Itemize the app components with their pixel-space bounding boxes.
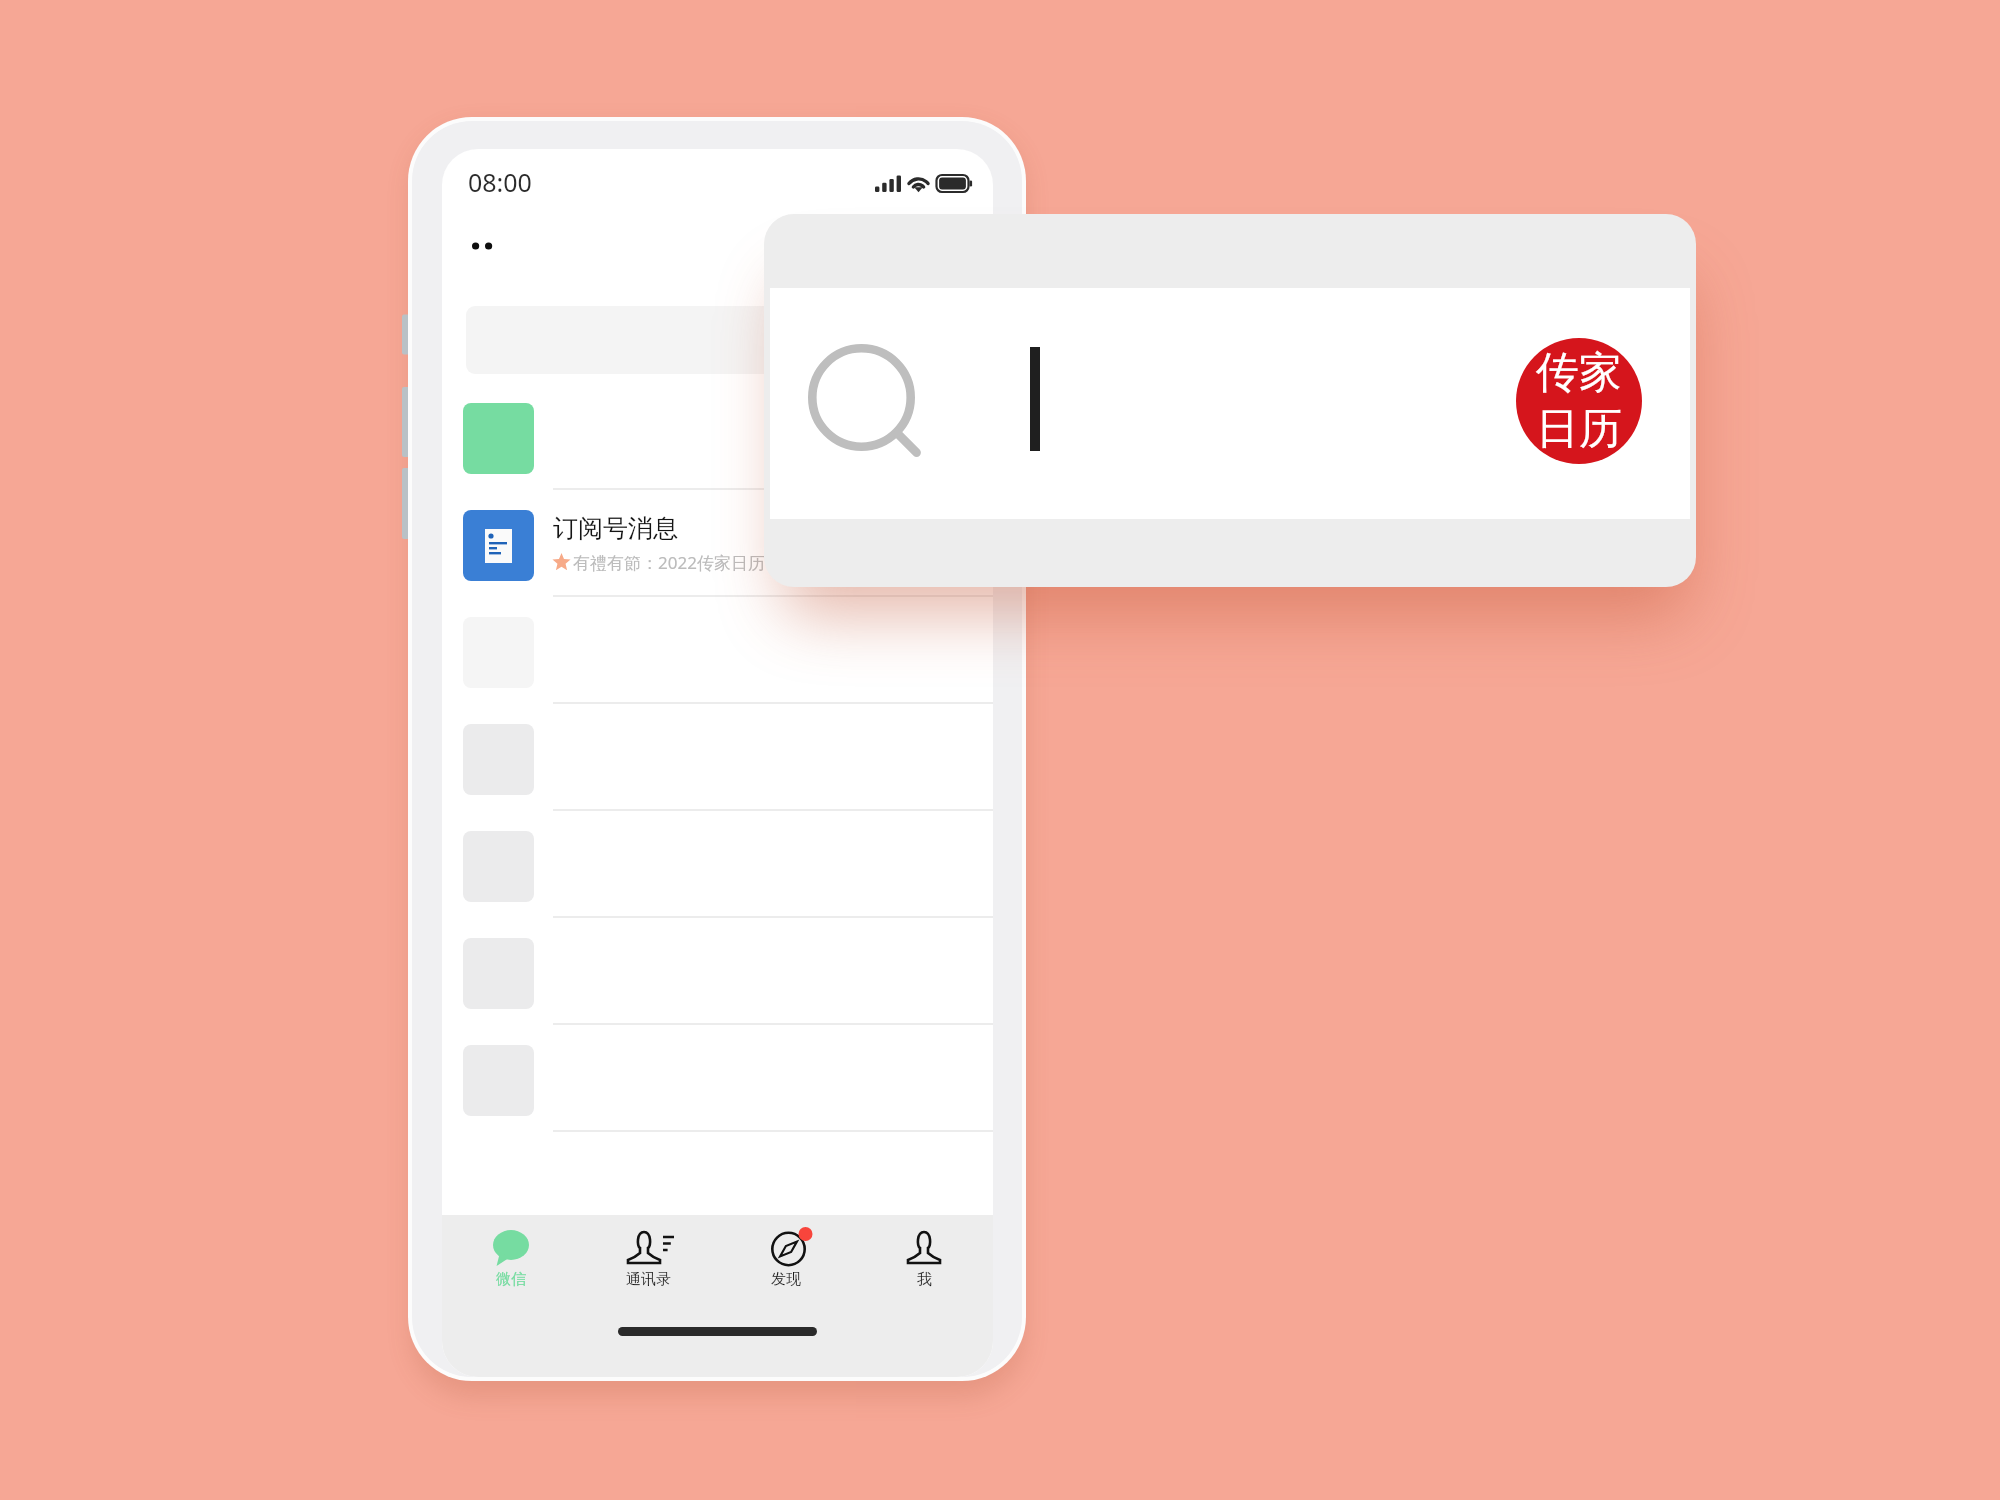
button[interactable] — [463, 1024, 993, 1134]
button[interactable]: 通讯录 — [579, 1230, 717, 1289]
other: Search — [800, 342, 930, 472]
button[interactable]: 发现 — [717, 1230, 855, 1289]
other: More — [472, 241, 496, 251]
button[interactable]: 订阅号消息 — [463, 489, 993, 599]
button[interactable] — [463, 703, 993, 813]
button[interactable] — [463, 810, 993, 920]
staticText: 微信 — [496, 1270, 526, 1289]
button[interactable]: 传家日历 — [1516, 338, 1642, 464]
button[interactable]: Search — [770, 288, 1690, 519]
staticText: 订阅号消息 — [553, 513, 678, 544]
button[interactable] — [463, 917, 993, 1027]
staticText: 日历 — [1536, 402, 1622, 456]
staticText: 通讯录 — [626, 1270, 671, 1289]
button[interactable] — [463, 382, 993, 492]
staticText: 我 — [917, 1270, 932, 1289]
button[interactable]: 微信 — [442, 1230, 579, 1289]
staticText: 发现 — [771, 1270, 801, 1289]
button[interactable]: Search — [466, 306, 971, 374]
staticText: 传家 — [1536, 346, 1622, 400]
button[interactable]: 我 — [855, 1230, 993, 1289]
button[interactable] — [463, 596, 993, 706]
staticText: 有禮有節：2022传家日历 — [573, 551, 765, 574]
staticText: 08:00 — [468, 165, 532, 199]
